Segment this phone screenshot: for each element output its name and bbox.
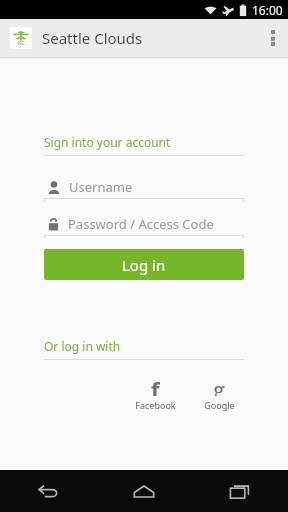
button[interactable]: f: [130, 374, 180, 411]
staticText: Username: [69, 178, 133, 196]
staticText: Log in: [122, 255, 166, 275]
button[interactable]: g: [194, 374, 244, 411]
button[interactable]: Username: [44, 176, 244, 202]
staticText: Or log in with: [44, 338, 121, 354]
button[interactable]: Home: [96, 470, 192, 512]
staticText: 16:00: [252, 2, 283, 18]
button[interactable]: More options: [258, 19, 288, 57]
button[interactable]: Recent apps: [192, 470, 288, 512]
staticText: g: [213, 374, 225, 396]
staticText: f: [151, 374, 160, 396]
button[interactable]: Back: [0, 470, 96, 512]
button[interactable]: sc: [0, 19, 288, 57]
staticText: Password / Access Code: [68, 215, 214, 233]
button[interactable]: Password / Access Code: [44, 213, 244, 239]
staticText: Sign into your account: [44, 134, 171, 150]
staticText: Google: [204, 399, 235, 411]
button[interactable]: Log in: [44, 249, 244, 280]
staticText: sc: [18, 38, 25, 48]
staticText: Facebook: [135, 399, 176, 411]
staticText: Seattle Clouds: [42, 28, 143, 48]
